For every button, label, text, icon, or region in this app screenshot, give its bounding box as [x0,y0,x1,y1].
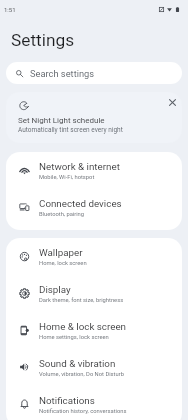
staticText: Settings [11,30,75,50]
staticText: Display [39,284,71,295]
staticText: Set Night Light schedule [18,116,105,125]
staticText: Home & lock screen [39,321,127,332]
button[interactable]: Home & lock screen [6,312,182,349]
staticText: Home, lock screen [39,260,87,267]
staticText: Search settings [30,68,95,79]
staticText: Mobile, Wi-Fi, hotspot [39,174,95,181]
button[interactable]: Display [6,275,182,312]
staticText: Network & internet [39,161,120,172]
staticText: Connected devices [39,198,122,209]
button[interactable]: Notifications [6,386,182,420]
button[interactable]: Set Night Light schedule [6,92,182,143]
staticText: Volume, vibration, Do Not Disturb [39,371,124,378]
staticText: Automatically tint screen every night [18,126,123,134]
staticText: Bluetooth, pairing [39,211,85,218]
staticText: 1:51 [4,6,16,13]
button[interactable]: Network & internet [6,152,182,189]
staticText: Notification history, conversations [39,408,127,415]
staticText: Sound & vibration [39,358,116,369]
staticText: Dark theme, font size, brightness [39,297,124,304]
staticText: Wallpaper [39,247,83,258]
button[interactable]: Search settings [6,62,182,84]
staticText: Home settings, lock screen [39,334,109,341]
button[interactable]: Wallpaper [6,238,182,275]
staticText: Notifications [39,395,95,406]
button[interactable]: Dismiss [162,92,182,112]
button[interactable]: Sound & vibration [6,349,182,386]
button[interactable]: Connected devices [6,189,182,226]
